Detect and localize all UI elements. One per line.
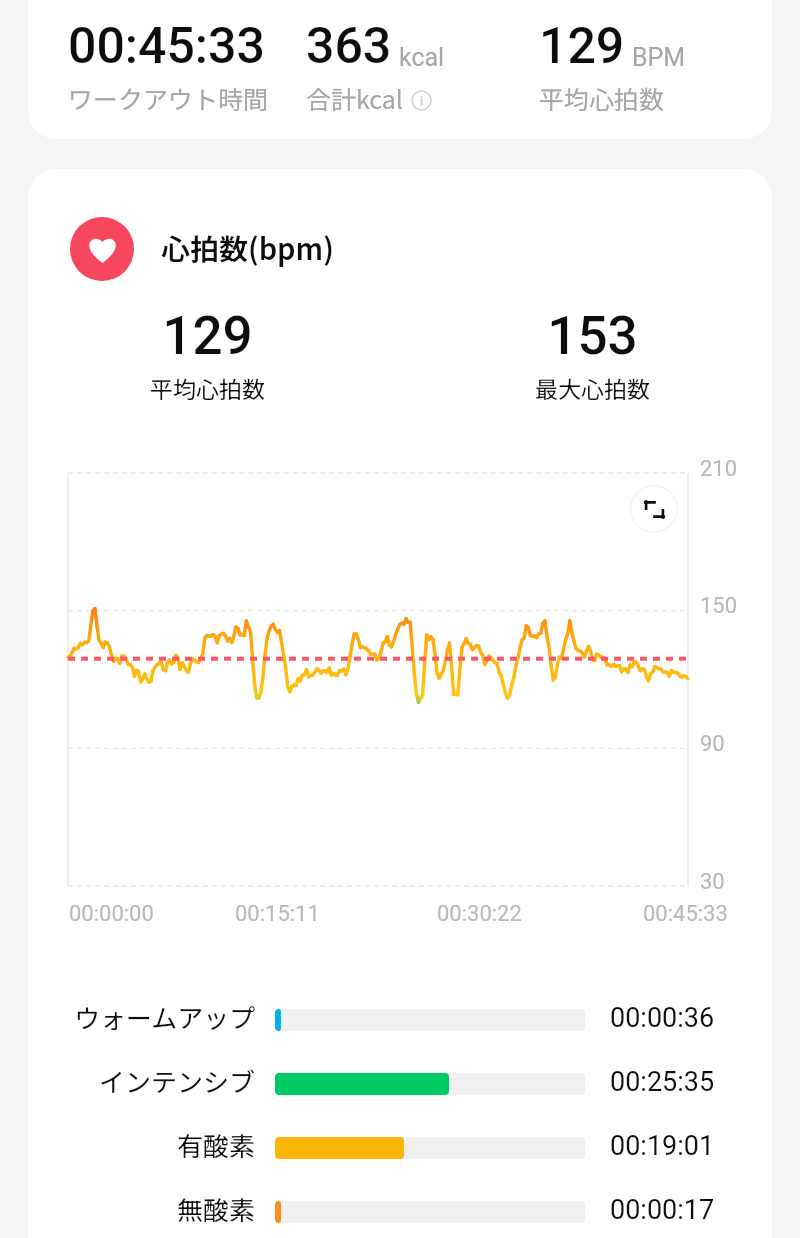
staticText: 153 xyxy=(547,305,638,367)
staticText: 心拍数(bpm) xyxy=(161,226,334,268)
staticText: 90 xyxy=(700,731,725,757)
staticText: 00:00:36 xyxy=(610,1002,715,1034)
staticText: 00:45:33 xyxy=(643,901,728,927)
staticText: 210 xyxy=(700,456,738,482)
button[interactable]: 有酸素 xyxy=(28,1116,772,1180)
staticText: 00:00:00 xyxy=(69,901,154,927)
staticText: 最大心拍数 xyxy=(535,371,650,404)
staticText: ワークアウト時間 xyxy=(68,80,269,116)
button[interactable]: 363 xyxy=(306,17,445,116)
staticText: 150 xyxy=(700,593,738,619)
staticText: 00:15:11 xyxy=(235,901,320,927)
staticText: ウォームアップ xyxy=(74,998,256,1036)
staticText: 363 xyxy=(306,17,392,76)
staticText: 平均心拍数 xyxy=(539,80,665,116)
button[interactable]: About total kcal xyxy=(411,90,432,111)
staticText: 無酸素 xyxy=(177,1190,256,1228)
button[interactable]: 00:45:33 xyxy=(68,17,269,116)
button[interactable]: Expand chart xyxy=(630,485,678,533)
staticText: 129 xyxy=(162,305,253,367)
button[interactable]: 無酸素 xyxy=(28,1180,772,1238)
staticText: 有酸素 xyxy=(177,1126,256,1164)
staticText: 30 xyxy=(700,869,725,895)
button[interactable]: 129 xyxy=(539,17,686,116)
staticText: 00:00:17 xyxy=(610,1194,715,1226)
button[interactable]: ウォームアップ xyxy=(28,988,772,1052)
staticText: インテンシブ xyxy=(99,1062,256,1100)
staticText: 合計kcal xyxy=(306,80,403,116)
staticText: 00:45:33 xyxy=(68,17,265,76)
staticText: kcal xyxy=(399,43,445,72)
button[interactable]: インテンシブ xyxy=(28,1052,772,1116)
staticText: 00:25:35 xyxy=(610,1066,715,1098)
staticText: 129 xyxy=(539,17,625,76)
staticText: 00:30:22 xyxy=(437,901,522,927)
staticText: BPM xyxy=(632,43,686,72)
staticText: 平均心拍数 xyxy=(150,371,265,404)
staticText: 00:19:01 xyxy=(610,1130,715,1162)
